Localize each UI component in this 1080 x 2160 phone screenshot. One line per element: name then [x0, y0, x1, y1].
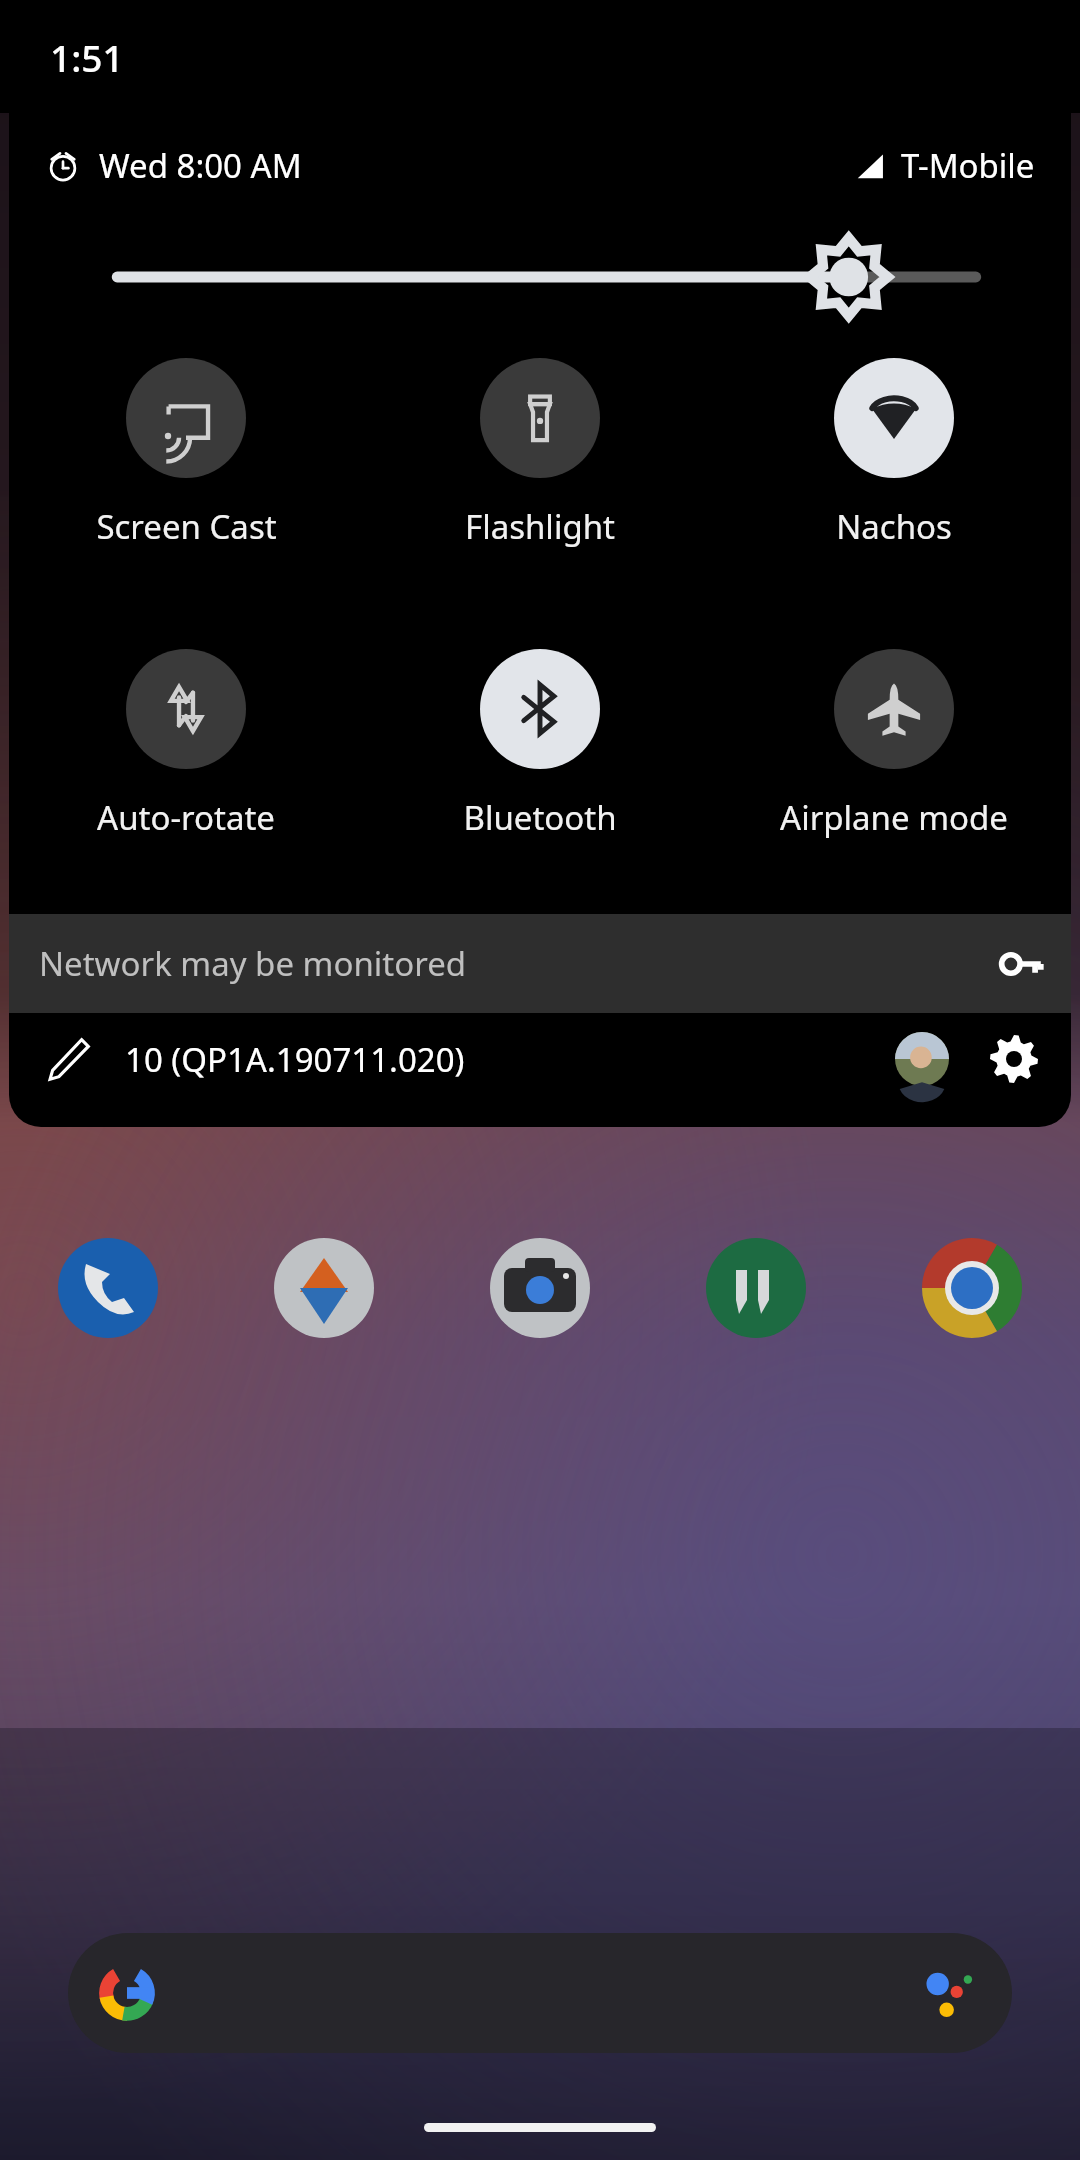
staticText: T-Mobile [901, 143, 1035, 188]
staticText: 1:51 [50, 32, 124, 82]
button[interactable]: Screen Cast [9, 358, 363, 549]
button[interactable]: Settings [981, 1026, 1047, 1092]
staticText: Screen Cast [96, 504, 277, 549]
staticText: Network may be monitored [39, 941, 467, 986]
staticText: Bluetooth [463, 795, 617, 840]
button[interactable]: Search [68, 1933, 1012, 2053]
staticText: Flashlight [465, 504, 615, 549]
button[interactable]: Wed 8:00 AM [45, 143, 302, 188]
staticText: Airplane mode [780, 795, 1008, 840]
button[interactable]: Auto-rotate [9, 649, 363, 840]
button[interactable]: Chrome [864, 1228, 1080, 1348]
button[interactable]: Hangouts [648, 1228, 864, 1348]
staticText: Wed 8:00 AM [99, 143, 302, 188]
button[interactable]: Airplane mode [717, 649, 1071, 840]
staticText: Auto-rotate [97, 795, 275, 840]
button[interactable]: Network may be monitored [9, 914, 1071, 1013]
button[interactable]: Phone [0, 1228, 216, 1348]
button[interactable]: Flashlight [363, 358, 717, 549]
button[interactable]: Camera [432, 1228, 648, 1348]
button[interactable]: User account [889, 1026, 955, 1092]
staticText: Nachos [836, 504, 952, 549]
staticText: 10 (QP1A.190711.020) [125, 1037, 465, 1082]
button[interactable]: Drive [216, 1228, 432, 1348]
button[interactable]: Nachos [717, 358, 1071, 549]
button[interactable]: Brightness [9, 218, 1071, 336]
button[interactable]: Bluetooth [363, 649, 717, 840]
button[interactable]: Edit tiles [39, 1029, 99, 1089]
